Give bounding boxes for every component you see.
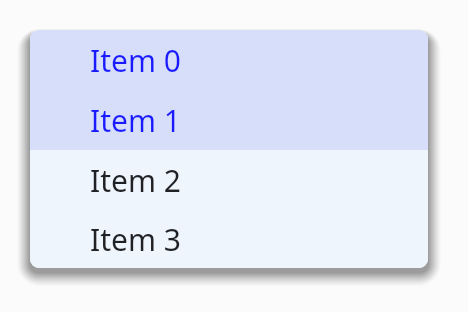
staticText: Item 2 — [90, 160, 181, 201]
button[interactable]: Item 3 — [30, 210, 428, 268]
button[interactable]: Item 0 — [30, 30, 428, 90]
staticText: Item 1 — [90, 100, 181, 141]
staticText: Item 0 — [90, 40, 181, 81]
button[interactable]: Item 1 — [30, 90, 428, 150]
button[interactable]: Item 2 — [30, 150, 428, 210]
staticText: Item 3 — [90, 219, 181, 260]
